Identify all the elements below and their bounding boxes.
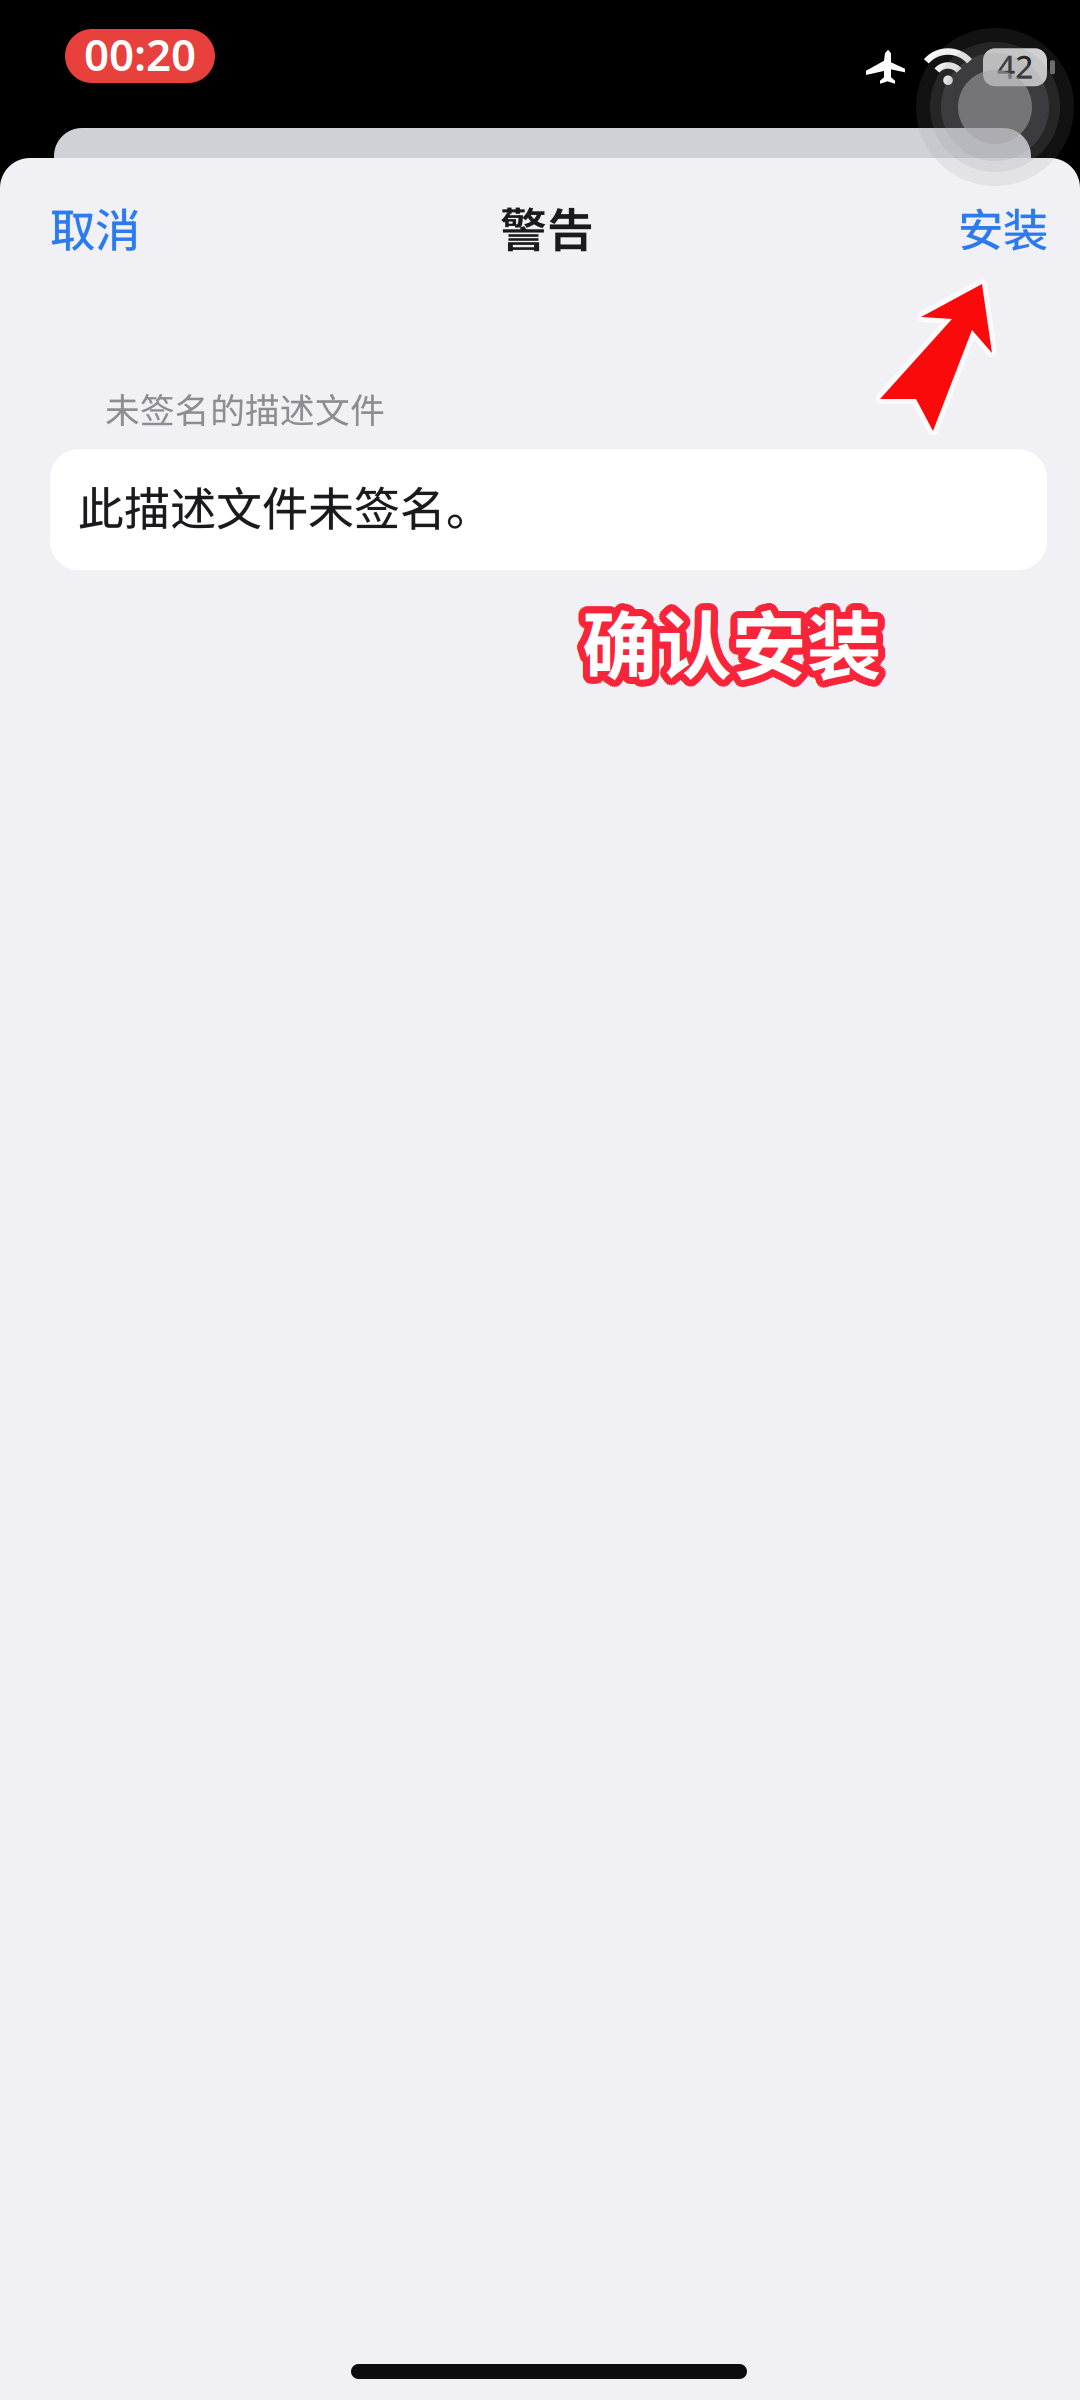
staticText: 确认安装 — [582, 587, 882, 695]
staticText: 确认安装 — [580, 594, 880, 702]
staticText: 确认安装 — [576, 583, 876, 692]
button[interactable]: 取消 — [50, 164, 170, 290]
staticText: 此描述文件未签名。 — [78, 472, 492, 539]
staticText: 确认安装 — [584, 580, 884, 688]
staticText: 确认安装 — [582, 594, 882, 702]
staticText: 安装 — [958, 194, 1048, 260]
staticText: 确认安装 — [580, 580, 880, 688]
staticText: 确认安装 — [585, 593, 885, 701]
button[interactable]: 辅助触控 — [916, 28, 1074, 186]
staticText: 未签名的描述文件 — [105, 383, 385, 433]
staticText: 确认安装 — [584, 594, 884, 702]
staticText: 确认安装 — [582, 580, 882, 688]
staticText: 取消 — [50, 194, 140, 260]
staticText: 确认安装 — [585, 581, 885, 689]
staticText: 确认安装 — [575, 587, 875, 695]
staticText: 确认安装 — [588, 583, 888, 692]
staticText: 42 — [997, 45, 1033, 87]
staticText: 确认安装 — [575, 585, 875, 693]
staticText: 警告 — [500, 193, 594, 261]
staticText: 确认安装 — [576, 590, 876, 699]
staticText: 确认安装 — [588, 590, 888, 699]
staticText: 确认安装 — [589, 587, 889, 695]
staticText: 确认安装 — [577, 592, 877, 700]
staticText: 确认安装 — [577, 582, 877, 690]
staticText: 确认安装 — [578, 581, 878, 689]
staticText: 00:20 — [84, 25, 196, 83]
staticText: 确认安装 — [578, 593, 878, 701]
staticText: 确认安装 — [587, 592, 887, 700]
staticText: 确认安装 — [575, 589, 875, 697]
staticText: 确认安装 — [589, 585, 889, 693]
staticText: 确认安装 — [587, 582, 887, 690]
button[interactable]: 安装 — [928, 164, 1048, 290]
staticText: 确认安装 — [589, 589, 889, 697]
